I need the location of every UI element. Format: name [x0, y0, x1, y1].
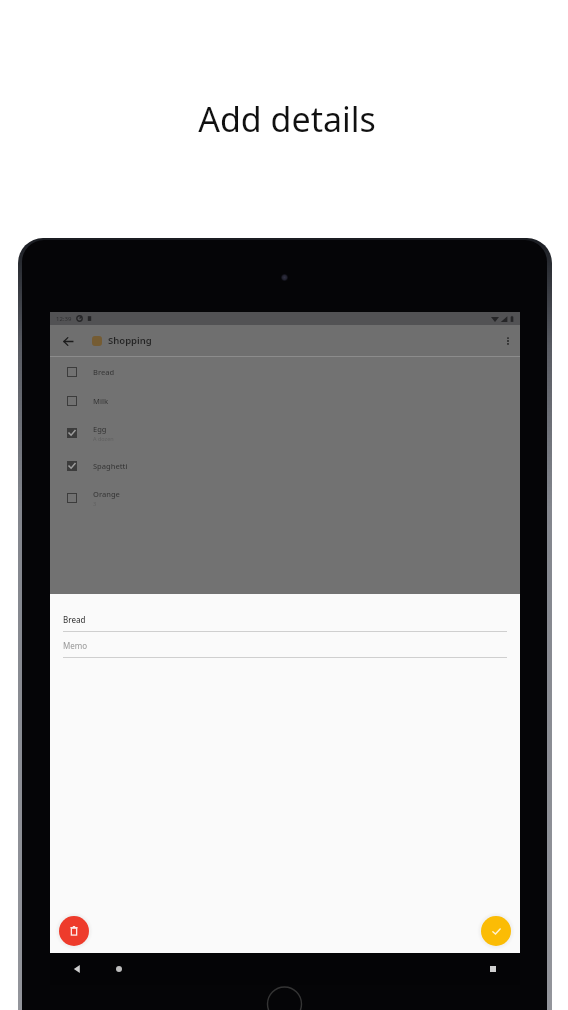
staticText: 12:39 [56, 315, 72, 323]
staticText: A dozen [93, 435, 114, 442]
staticText: Bread [63, 614, 86, 625]
button[interactable]: Back [59, 332, 77, 350]
button[interactable]: Home [110, 960, 128, 978]
button[interactable]: Milk [50, 386, 520, 415]
staticText: Orange [93, 489, 120, 499]
button[interactable]: More options [499, 332, 517, 350]
staticText: Egg [93, 424, 107, 434]
button[interactable]: Bread [50, 357, 520, 386]
button[interactable]: Save [481, 916, 511, 946]
button[interactable]: Spaghetti [50, 451, 520, 480]
staticText: Add details [198, 96, 376, 142]
staticText: 3 [93, 500, 97, 507]
staticText: Milk [93, 396, 109, 406]
staticText: Memo [63, 640, 88, 651]
button[interactable]: Orange [50, 480, 520, 516]
staticText: Shopping [108, 334, 152, 347]
staticText: Bread [93, 367, 115, 377]
staticText: Spaghetti [93, 461, 128, 471]
button[interactable]: Delete [59, 916, 89, 946]
button[interactable]: Recent apps [484, 960, 502, 978]
button[interactable]: Back [68, 960, 86, 978]
button[interactable]: Egg [50, 415, 520, 451]
